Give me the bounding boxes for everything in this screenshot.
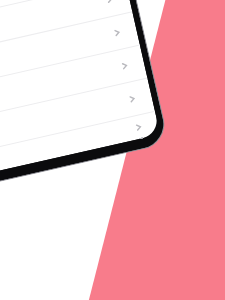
button[interactable]: Fizik: [0, 0, 132, 58]
other: Open: [127, 94, 138, 104]
button[interactable]: Tarih: [0, 112, 160, 181]
button[interactable]: Kimya: [0, 12, 140, 91]
other: Open: [119, 60, 130, 71]
other: Open: [104, 0, 115, 5]
button[interactable]: Matematik: [0, 0, 125, 25]
other: Open: [112, 27, 122, 38]
other: Open: [133, 122, 144, 133]
button[interactable]: Biyoloji: [0, 45, 147, 124]
button[interactable]: Türkçe: [0, 79, 155, 157]
